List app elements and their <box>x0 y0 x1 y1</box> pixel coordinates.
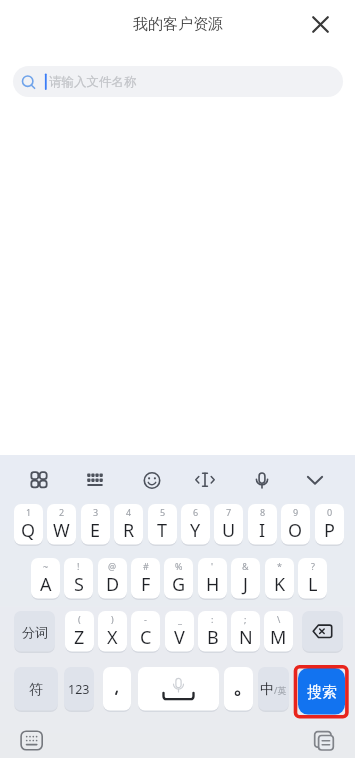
button[interactable]: \ <box>264 611 293 653</box>
staticText: V <box>174 625 185 650</box>
button[interactable]: ( <box>65 611 94 653</box>
button[interactable] <box>240 458 284 502</box>
staticText: M <box>270 625 287 650</box>
button[interactable]: _ <box>165 611 194 653</box>
staticText: ( <box>78 613 81 625</box>
staticText: 123 <box>68 681 90 698</box>
button[interactable]: 0 <box>315 504 344 546</box>
button[interactable] <box>302 611 343 653</box>
button[interactable]: ; <box>231 611 260 653</box>
staticText: ' <box>211 560 214 572</box>
staticText: 2 <box>59 506 65 518</box>
button[interactable]: 7 <box>214 504 243 546</box>
staticText: 0 <box>327 506 333 518</box>
staticText: B <box>207 625 219 650</box>
staticText: Q <box>21 518 36 543</box>
staticText: : <box>211 613 214 625</box>
staticText: ) <box>111 613 114 625</box>
button[interactable]: 符 <box>14 667 58 712</box>
button[interactable] <box>130 458 174 502</box>
button[interactable]: 搜索 <box>298 668 345 716</box>
button[interactable]: @ <box>98 558 127 600</box>
button[interactable] <box>14 724 48 758</box>
button[interactable]: 分词 <box>14 611 55 653</box>
staticText: I <box>259 518 266 543</box>
staticText: 4 <box>126 506 132 518</box>
button[interactable]: 123 <box>64 667 94 712</box>
button[interactable]: # <box>131 558 160 600</box>
button[interactable] <box>73 458 117 502</box>
button[interactable]: ' <box>198 558 227 600</box>
button[interactable]: 8 <box>248 504 277 546</box>
button[interactable]: 3 <box>81 504 110 546</box>
button[interactable]: % <box>164 558 193 600</box>
staticText: 6 <box>193 506 199 518</box>
button[interactable]: 4 <box>114 504 143 546</box>
button[interactable] <box>138 667 219 712</box>
button[interactable]: ) <box>98 611 127 653</box>
staticText: ; <box>244 613 247 625</box>
staticText: ? <box>311 560 315 572</box>
staticText: K <box>274 572 286 597</box>
staticText: /英 <box>274 684 287 696</box>
button[interactable]: ? <box>298 558 327 600</box>
button[interactable]: 请输入文件名称 <box>13 66 343 97</box>
button[interactable]: 1 <box>14 504 43 546</box>
button[interactable]: 5 <box>148 504 177 546</box>
button[interactable]: * <box>265 558 294 600</box>
button[interactable]: ~ <box>31 558 60 600</box>
staticText: U <box>222 518 236 543</box>
button[interactable]: 中 <box>258 667 289 712</box>
staticText: X <box>107 625 118 650</box>
button[interactable]: 6 <box>181 504 210 546</box>
button[interactable]: & <box>231 558 260 600</box>
staticText: O <box>288 518 303 543</box>
staticText: 请输入文件名称 <box>49 74 137 90</box>
button[interactable]: 9 <box>281 504 310 546</box>
staticText: 我的客户资源 <box>133 15 223 34</box>
staticText: T <box>157 518 168 543</box>
staticText: E <box>90 518 101 543</box>
button[interactable] <box>224 667 253 712</box>
staticText: % <box>175 560 183 572</box>
staticText: 5 <box>160 506 166 518</box>
staticText: 7 <box>226 506 232 518</box>
button[interactable] <box>17 458 61 502</box>
staticText: P <box>324 518 335 543</box>
staticText: Y <box>190 518 201 543</box>
staticText: # <box>143 560 149 572</box>
staticText: @ <box>108 560 117 572</box>
staticText: 3 <box>93 506 99 518</box>
staticText: R <box>123 518 135 543</box>
staticText: L <box>308 572 318 597</box>
staticText: * <box>277 560 282 572</box>
staticText: W <box>53 518 70 543</box>
staticText: 1 <box>26 506 32 518</box>
staticText: \ <box>277 613 281 625</box>
staticText: 中 <box>260 681 274 699</box>
staticText: F <box>141 572 151 597</box>
button[interactable]: 2 <box>47 504 76 546</box>
staticText: 分词 <box>22 624 48 640</box>
button[interactable] <box>305 9 335 39</box>
staticText: C <box>140 625 152 650</box>
button[interactable] <box>293 458 337 502</box>
staticText: Z <box>74 625 85 650</box>
staticText: H <box>206 572 220 597</box>
staticText: J <box>243 572 248 597</box>
staticText: 符 <box>29 681 43 699</box>
button[interactable] <box>183 458 227 502</box>
staticText: 搜索 <box>307 683 337 702</box>
button[interactable] <box>307 724 341 758</box>
staticText: A <box>40 572 52 597</box>
button[interactable] <box>103 667 131 712</box>
staticText: D <box>106 572 120 597</box>
button[interactable]: ! <box>64 558 93 600</box>
staticText: N <box>239 625 253 650</box>
staticText: & <box>242 560 249 572</box>
staticText: 8 <box>260 506 266 518</box>
staticText: ~ <box>43 560 49 572</box>
button[interactable]: : <box>198 611 227 653</box>
staticText: 9 <box>293 506 299 518</box>
button[interactable]: - <box>131 611 160 653</box>
